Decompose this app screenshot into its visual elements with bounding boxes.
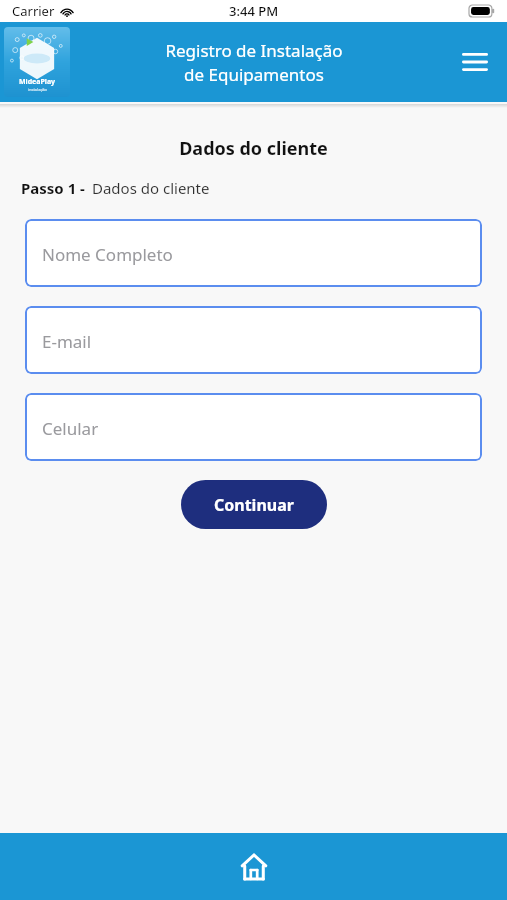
staticText: 3:44 PM xyxy=(229,2,279,20)
staticText: Continuar xyxy=(214,494,294,516)
staticText: Passo 1 - xyxy=(21,178,85,198)
staticText: Celular xyxy=(42,417,99,440)
button[interactable]: Menu xyxy=(451,38,499,86)
button[interactable]: Continuar xyxy=(181,480,327,529)
staticText: Carrier xyxy=(12,2,55,20)
staticText: E-mail xyxy=(42,330,92,353)
staticText: Nome Completo xyxy=(42,243,173,266)
button[interactable]: Nome Completo xyxy=(25,219,482,287)
staticText: Registro de Instalação de Equipamentos xyxy=(165,39,343,86)
staticText: MideaPlay xyxy=(19,77,56,87)
staticText: instalação xyxy=(28,87,47,92)
button[interactable]: E-mail xyxy=(25,306,482,374)
staticText: Dados do cliente xyxy=(92,178,210,198)
button[interactable]: Logo xyxy=(4,27,70,97)
staticText: Dados do cliente xyxy=(0,136,507,161)
button[interactable]: Home xyxy=(230,843,278,891)
button[interactable]: Celular xyxy=(25,393,482,461)
